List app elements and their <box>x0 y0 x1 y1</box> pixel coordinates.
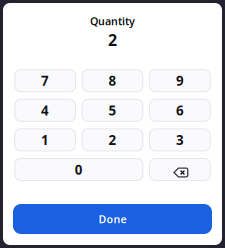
button[interactable]: 9 <box>149 69 211 92</box>
staticText: 0 <box>75 161 83 178</box>
staticText: 3 <box>176 131 184 149</box>
staticText: Quantity <box>90 14 135 28</box>
staticText: 7 <box>41 72 49 89</box>
button[interactable]: 2 <box>82 128 143 151</box>
button[interactable]: 3 <box>149 128 211 151</box>
button[interactable]: 0 <box>14 158 143 181</box>
button[interactable]: Delete <box>149 158 211 181</box>
button[interactable]: 8 <box>82 69 143 92</box>
staticText: 2 <box>108 29 117 50</box>
staticText: 4 <box>41 101 49 119</box>
button[interactable]: 7 <box>14 69 76 92</box>
button[interactable]: 4 <box>14 99 76 122</box>
staticText: 6 <box>176 101 184 119</box>
button[interactable]: 1 <box>14 128 76 151</box>
staticText: 9 <box>176 72 184 89</box>
button[interactable]: 5 <box>82 99 143 122</box>
staticText: 1 <box>41 131 49 149</box>
button[interactable]: 6 <box>149 99 211 122</box>
button[interactable]: Done <box>13 204 212 234</box>
staticText: 5 <box>108 101 116 119</box>
staticText: 2 <box>108 131 116 149</box>
staticText: 8 <box>108 72 116 89</box>
staticText: Done <box>98 212 126 226</box>
